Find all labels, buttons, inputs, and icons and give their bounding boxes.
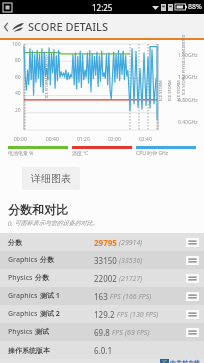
staticText: 1.20GHz: [178, 74, 198, 81]
staticText: 详细图表: [31, 172, 71, 185]
staticText: Physics: [8, 327, 35, 337]
staticText: 分数: [40, 255, 54, 264]
staticText: 163: [94, 291, 108, 302]
button[interactable]: 操作系统版本: [0, 341, 204, 359]
staticText: 69.8: [94, 327, 110, 338]
staticText: ICE STORM: [176, 80, 181, 101]
staticText: 33150: [94, 255, 117, 266]
staticText: 12:25: [92, 2, 113, 13]
staticText: Graphics: [8, 309, 40, 319]
staticText: 00:00: [14, 136, 46, 143]
staticText: 02:00: [108, 136, 139, 143]
staticText: 分数: [35, 273, 49, 282]
button[interactable]: Graphics: [0, 287, 204, 305]
staticText: (33536): [119, 256, 143, 266]
button[interactable]: Options: [180, 323, 204, 341]
staticText: 温度 ℃: [72, 150, 89, 157]
staticText: 80: [15, 57, 21, 64]
staticText: 01:20: [77, 136, 108, 143]
staticText: (), 可图标表示与您的设备的对比。: [8, 219, 99, 227]
staticText: 操作系统版本: [8, 346, 50, 355]
staticText: (130 FPS): [130, 310, 159, 320]
staticText: FPS: [108, 292, 121, 302]
button[interactable]: Options: [180, 233, 204, 251]
staticText: Graphics: [8, 255, 40, 265]
staticText: 100: [12, 41, 21, 48]
button[interactable]: Options: [180, 269, 204, 287]
staticText: 测试 2: [40, 309, 60, 319]
staticText: ICE STORM PHYSICS UNLIMITED: [181, 34, 186, 95]
staticText: 测试 1: [40, 291, 60, 301]
staticText: ICE STORM: [167, 80, 172, 101]
button[interactable]: 分数: [0, 233, 204, 251]
button[interactable]: Graphics: [0, 305, 204, 323]
staticText: 29795: [94, 237, 117, 248]
button[interactable]: Options: [180, 305, 204, 323]
staticText: 测试: [35, 327, 49, 336]
button[interactable]: Graphics: [0, 251, 204, 269]
staticText: (69 FPS): [125, 328, 150, 338]
staticText: Physics: [8, 273, 35, 283]
staticText: ICE STORM: [158, 80, 163, 101]
staticText: Graphics: [8, 291, 40, 301]
button[interactable]: Options: [180, 287, 204, 305]
staticText: 129.2: [94, 309, 115, 320]
staticText: FPS: [115, 310, 128, 320]
staticText: 0.80GHz: [178, 97, 198, 104]
staticText: 中关村在线: [170, 359, 200, 363]
staticText: 00:40: [46, 136, 77, 143]
staticText: 1.60GHz: [178, 52, 198, 59]
button[interactable]: Physics: [0, 323, 204, 341]
staticText: 02:40: [139, 136, 170, 143]
staticText: CPU 时钟 GHz: [136, 150, 169, 157]
staticText: 电池电量 %: [8, 150, 34, 157]
staticText: SCORE DETAILS: [28, 19, 108, 34]
staticText: FPS: [110, 328, 123, 338]
staticText: 6.0.1: [94, 345, 113, 356]
staticText: ICE STORM UNLIMITED: [43, 54, 48, 98]
staticText: (29914): [119, 238, 143, 248]
button[interactable]: 详细图表: [22, 167, 80, 190]
button[interactable]: Physics: [0, 269, 204, 287]
button[interactable]: Back: [3, 19, 108, 34]
staticText: 88%: [188, 2, 202, 12]
staticText: (21727): [119, 274, 143, 284]
staticText: 分数: [8, 238, 22, 247]
staticText: 0.40GHz: [178, 119, 198, 126]
staticText: 60: [15, 74, 21, 81]
staticText: (166 FPS): [123, 292, 152, 302]
staticText: 分数和对比: [8, 202, 68, 217]
staticText: 20: [15, 107, 21, 114]
staticText: 40: [15, 90, 21, 97]
staticText: 22002: [94, 273, 117, 284]
button[interactable]: Options: [180, 251, 204, 269]
